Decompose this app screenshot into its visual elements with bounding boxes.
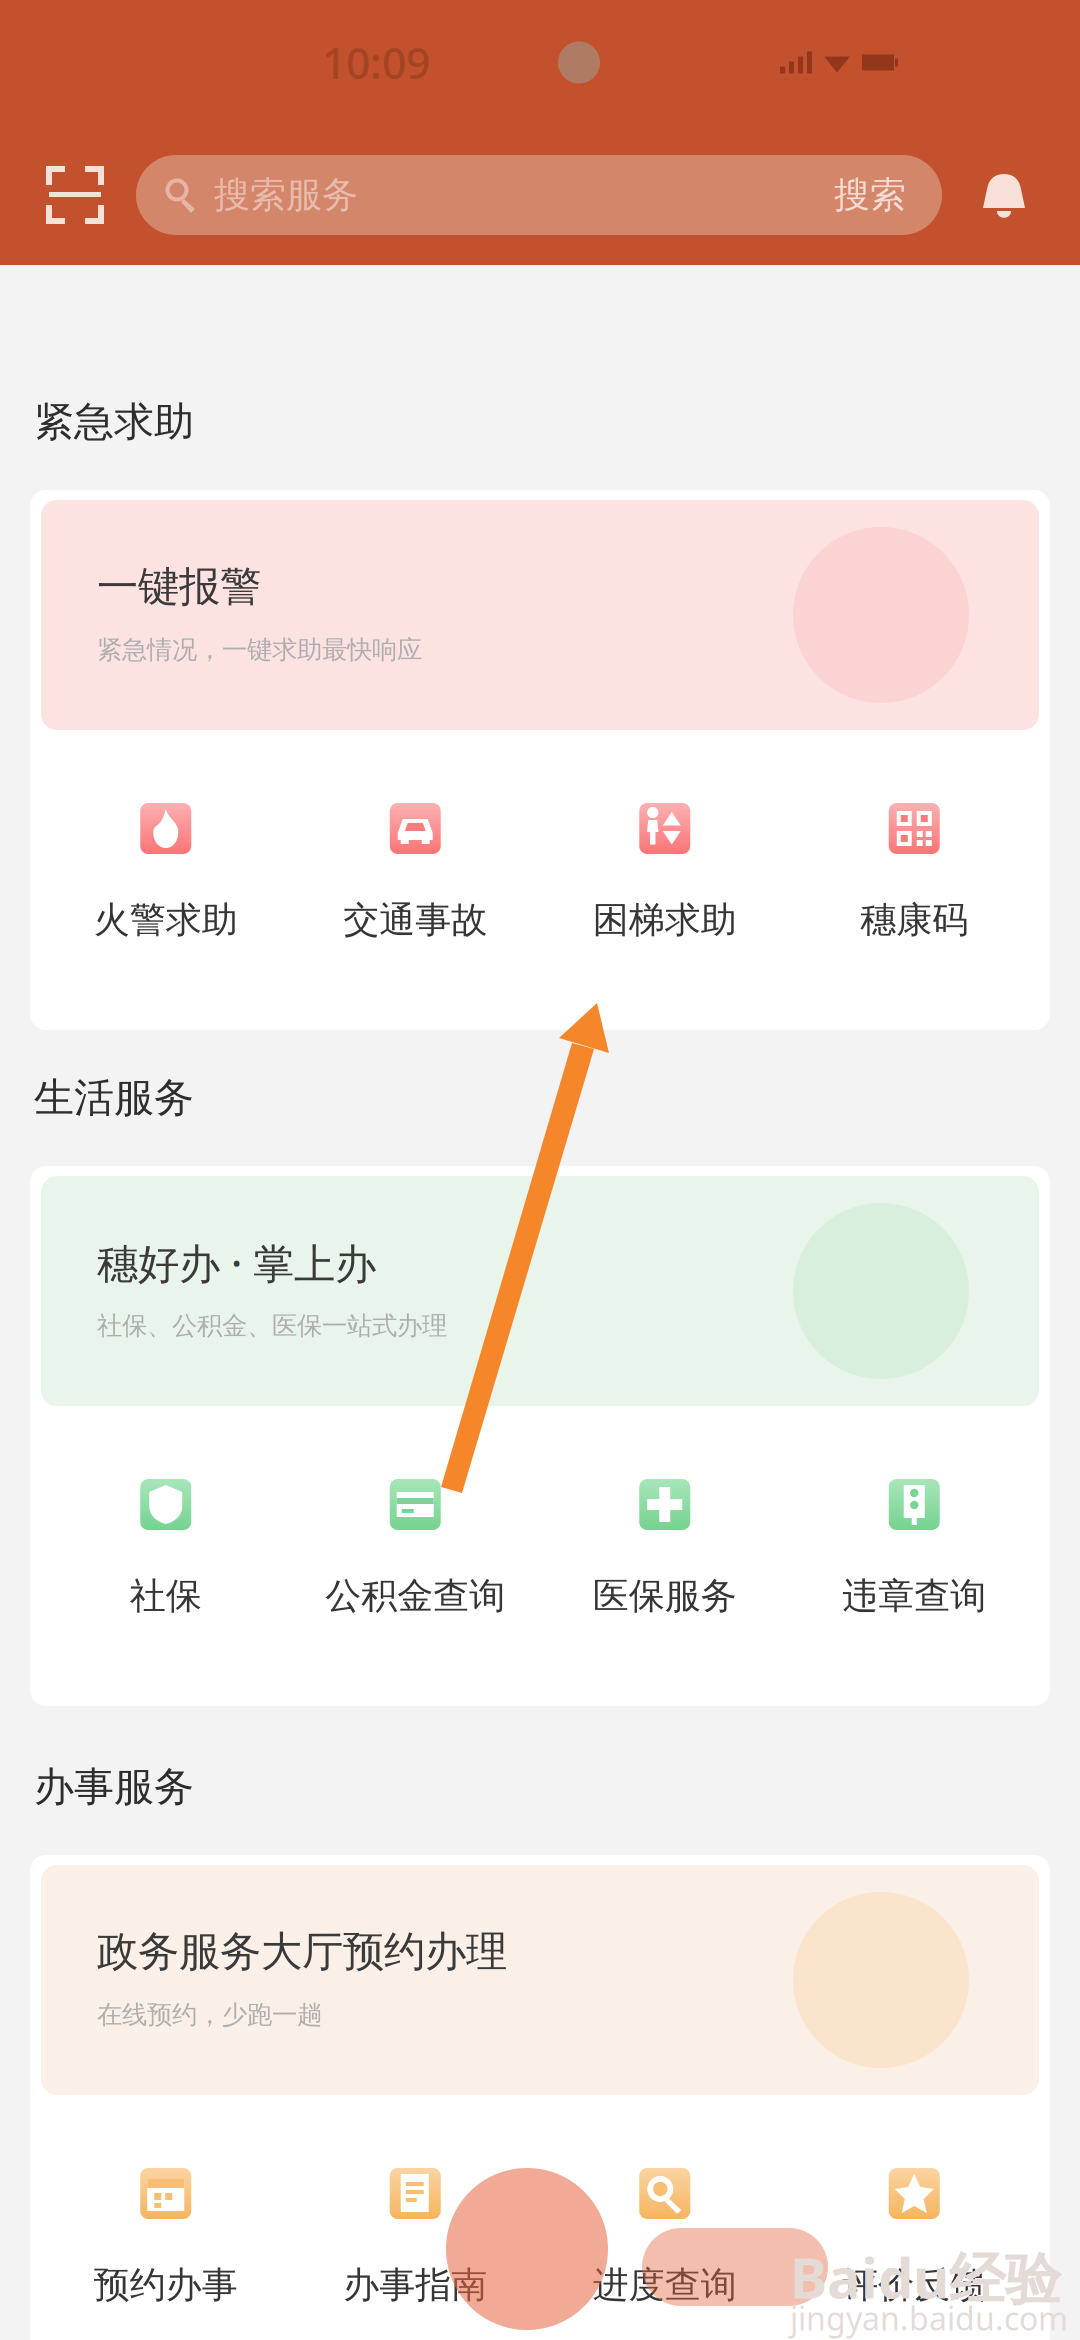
- button[interactable]: 公积金查询: [290, 1479, 540, 1618]
- staticText: 进度查询: [593, 2263, 737, 2307]
- staticText: 紧急求助: [34, 397, 194, 446]
- staticText: 办事服务: [34, 1762, 194, 1811]
- staticText: 预约办事: [94, 2263, 238, 2307]
- button[interactable]: Notifications: [976, 145, 1032, 245]
- staticText: Baidu经验: [790, 2240, 1061, 2314]
- button[interactable]: 交通事故: [290, 803, 540, 942]
- staticText: 政务服务大厅预约办理: [97, 1926, 507, 1977]
- staticText: 评价反馈: [842, 2263, 986, 2307]
- button[interactable]: 穗康码: [789, 803, 1039, 942]
- button[interactable]: 预约办事: [41, 2168, 290, 2307]
- staticText: 医保服务: [593, 1574, 737, 1618]
- staticText: 交通事故: [343, 898, 487, 942]
- staticText: 违章查询: [842, 1574, 986, 1618]
- button[interactable]: 火警求助: [41, 803, 290, 942]
- staticText: 10:09: [322, 34, 430, 91]
- staticText: 困梯求助: [593, 898, 737, 942]
- button[interactable]: 困梯求助: [540, 803, 789, 942]
- button[interactable]: 医保服务: [540, 1479, 789, 1618]
- staticText: 生活服务: [34, 1073, 194, 1122]
- button[interactable]: 进度查询: [540, 2168, 789, 2307]
- staticText: 办事指南: [343, 2263, 487, 2307]
- button[interactable]: 搜索服务: [136, 155, 942, 235]
- staticText: 火警求助: [94, 898, 238, 942]
- staticText: 搜索服务: [214, 173, 358, 217]
- staticText: 穗康码: [860, 898, 968, 942]
- button[interactable]: 办事指南: [290, 2168, 540, 2307]
- button[interactable]: 一键报警: [41, 500, 1039, 730]
- button[interactable]: 穗好办 · 掌上办: [41, 1176, 1039, 1406]
- staticText: 搜索: [834, 173, 906, 217]
- staticText: 公积金查询: [325, 1574, 505, 1618]
- staticText: 一键报警: [97, 561, 261, 612]
- button[interactable]: 评价反馈: [789, 2168, 1039, 2307]
- button[interactable]: Scan QR code: [46, 145, 104, 245]
- staticText: 穗好办 · 掌上办: [97, 1235, 376, 1290]
- button[interactable]: 违章查询: [789, 1479, 1039, 1618]
- button[interactable]: 社保: [41, 1479, 290, 1618]
- button[interactable]: 政务服务大厅预约办理: [41, 1865, 1039, 2095]
- staticText: 社保、公积金、医保一站式办理: [97, 1310, 447, 1341]
- staticText: 在线预约，少跑一趟: [97, 1999, 322, 2030]
- staticText: 社保: [130, 1574, 202, 1618]
- staticText: 紧急情况，一键求助最快响应: [97, 634, 422, 665]
- staticText: jingyan.baidu.com: [790, 2297, 1068, 2339]
